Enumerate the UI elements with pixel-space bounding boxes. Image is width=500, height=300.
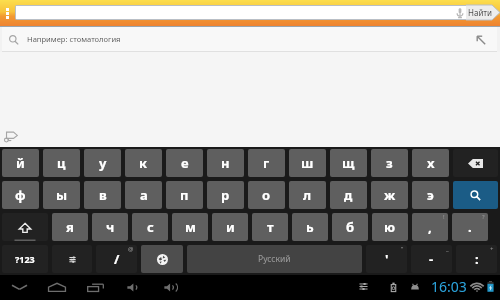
button[interactable]: э xyxy=(412,181,449,209)
button[interactable]: ж xyxy=(371,181,408,209)
button[interactable]: з xyxy=(371,149,408,177)
button[interactable]: к xyxy=(125,149,162,177)
button[interactable]: и xyxy=(212,213,248,241)
staticText: а xyxy=(140,186,148,204)
staticText: л xyxy=(303,186,312,204)
staticText: т xyxy=(267,218,274,236)
button[interactable]: р xyxy=(207,181,244,209)
staticText: у xyxy=(99,154,107,172)
button[interactable]: Input options xyxy=(52,245,92,273)
button[interactable]: Русский xyxy=(187,245,362,273)
staticText: ?123 xyxy=(15,253,35,265)
staticText: " xyxy=(401,245,404,253)
button[interactable]: Shift xyxy=(2,213,48,241)
button[interactable]: п xyxy=(166,181,203,209)
staticText: Например: стоматология xyxy=(27,34,121,44)
staticText: и xyxy=(226,218,235,236)
button[interactable]: в xyxy=(84,181,121,209)
staticText: г xyxy=(263,154,270,172)
staticText: : xyxy=(475,250,479,268)
staticText: о xyxy=(262,186,271,204)
staticText: @ xyxy=(128,245,134,253)
staticText: ' xyxy=(385,250,389,268)
button[interactable]: ю xyxy=(372,213,408,241)
staticText: п xyxy=(180,186,189,204)
button[interactable]: ц xyxy=(43,149,80,177)
button[interactable]: с xyxy=(132,213,168,241)
staticText: ж xyxy=(384,186,396,204)
staticText: н xyxy=(221,154,230,172)
button[interactable]: Volume up xyxy=(152,276,190,299)
staticText: в xyxy=(99,186,107,204)
button[interactable]: Change language xyxy=(141,245,183,273)
button[interactable]: . xyxy=(452,213,488,241)
staticText: д xyxy=(344,186,353,204)
staticText: ы xyxy=(56,186,68,204)
button[interactable]: ы xyxy=(43,181,80,209)
staticText: ф xyxy=(15,186,26,204)
button[interactable]: я xyxy=(52,213,88,241)
button[interactable]: д xyxy=(330,181,367,209)
staticText: к xyxy=(139,154,148,172)
button[interactable]: о xyxy=(248,181,285,209)
button[interactable]: й xyxy=(2,149,39,177)
other: Insert suggestion xyxy=(476,35,486,45)
staticText: х xyxy=(427,154,435,172)
button[interactable]: е xyxy=(166,149,203,177)
button[interactable]: м xyxy=(172,213,208,241)
button[interactable]: Home xyxy=(38,276,76,299)
button[interactable]: ?123 xyxy=(2,245,48,273)
button[interactable]: Search xyxy=(453,181,498,209)
staticText: . xyxy=(468,218,472,236)
staticText: ч xyxy=(106,218,115,236)
button[interactable]: Например: стоматология xyxy=(2,27,497,52)
button[interactable]: н xyxy=(207,149,244,177)
button[interactable]: Hide keyboard xyxy=(0,276,38,299)
button[interactable]: т xyxy=(252,213,288,241)
button[interactable]: а xyxy=(125,181,162,209)
button[interactable]: щ xyxy=(330,149,367,177)
button[interactable]: / xyxy=(96,245,137,273)
staticText: + xyxy=(490,245,494,253)
staticText: ю xyxy=(384,218,396,236)
button[interactable]: у xyxy=(84,149,121,177)
button[interactable]: ь xyxy=(292,213,328,241)
button[interactable]: More options xyxy=(0,0,15,26)
button[interactable]: Backspace xyxy=(453,149,498,177)
staticText: Найти xyxy=(468,7,493,18)
staticText: э xyxy=(427,186,434,204)
button[interactable]: ф xyxy=(2,181,39,209)
staticText: ь xyxy=(306,218,314,236)
button[interactable]: г xyxy=(248,149,285,177)
button[interactable]: ш xyxy=(289,149,326,177)
button[interactable]: - xyxy=(411,245,452,273)
button[interactable]: ' xyxy=(366,245,407,273)
staticText: , xyxy=(428,218,432,236)
staticText: м xyxy=(185,218,196,236)
button[interactable]: ч xyxy=(92,213,128,241)
button[interactable]: х xyxy=(412,149,449,177)
staticText: б xyxy=(346,218,355,236)
staticText: 16:03 xyxy=(431,277,467,296)
staticText: с xyxy=(147,218,154,236)
staticText: - xyxy=(429,250,434,268)
staticText: й xyxy=(16,154,25,172)
button[interactable]: : xyxy=(456,245,497,273)
staticText: _ xyxy=(446,245,449,253)
button[interactable]: Volume down xyxy=(114,276,152,299)
button[interactable]: Keyboard settings xyxy=(2,127,20,145)
staticText: е xyxy=(181,154,189,172)
staticText: / xyxy=(114,250,120,268)
button[interactable]: Voice search xyxy=(453,6,466,19)
staticText: я xyxy=(66,218,74,236)
button[interactable]: л xyxy=(289,181,326,209)
staticText: ! xyxy=(443,213,445,221)
button[interactable]: Найти xyxy=(466,5,500,20)
staticText: ц xyxy=(57,154,66,172)
button[interactable]: , xyxy=(412,213,448,241)
button[interactable]: Voice search xyxy=(16,6,466,19)
staticText: ш xyxy=(301,154,314,172)
staticText: щ xyxy=(342,154,355,172)
button[interactable]: б xyxy=(332,213,368,241)
button[interactable]: Recents xyxy=(76,276,114,299)
